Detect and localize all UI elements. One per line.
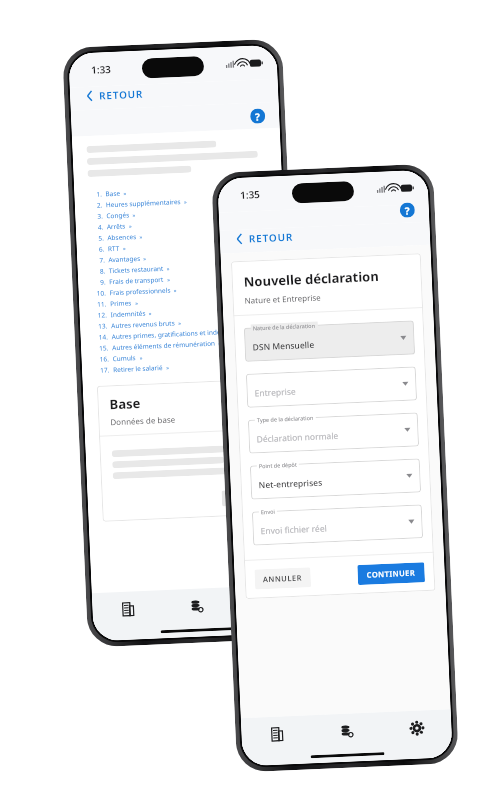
button[interactable]: Net-entreprises bbox=[250, 458, 421, 500]
staticText: 1. bbox=[96, 189, 103, 199]
button[interactable]: 7. bbox=[91, 247, 271, 266]
button[interactable]: 2. bbox=[89, 192, 269, 211]
staticText: Déclaration normale bbox=[256, 430, 339, 445]
staticText: » bbox=[129, 222, 132, 229]
button[interactable]: 4. bbox=[90, 214, 270, 233]
staticText: Autres éléments de rémunération bbox=[112, 339, 215, 352]
staticText: » bbox=[148, 309, 152, 316]
staticText: ANNULER bbox=[263, 572, 303, 584]
staticText: Tickets restaurant bbox=[109, 264, 164, 275]
staticText: Heures supplémentaires bbox=[106, 197, 181, 209]
staticText: Autres revenus bruts bbox=[111, 318, 175, 330]
button[interactable]: ANNULER bbox=[254, 567, 311, 590]
staticText: » bbox=[139, 233, 142, 240]
staticText: DSN Mensuelle bbox=[252, 339, 315, 353]
staticText: Retirer le salarié bbox=[113, 363, 163, 374]
staticText: » bbox=[244, 327, 248, 334]
button[interactable]: 3. bbox=[89, 203, 269, 222]
button[interactable]: RETOUR bbox=[219, 222, 430, 254]
staticText: Entreprise bbox=[254, 386, 296, 399]
staticText: Primes bbox=[110, 298, 132, 308]
staticText: » bbox=[166, 364, 169, 371]
button[interactable]: 10. bbox=[92, 280, 273, 299]
staticText: Envoi bbox=[261, 508, 275, 515]
staticText: » bbox=[132, 211, 135, 218]
staticText: Congés bbox=[106, 210, 130, 220]
button[interactable]: Aide bbox=[250, 108, 265, 124]
staticText: 10. bbox=[97, 288, 107, 298]
staticText: 11. bbox=[97, 299, 107, 309]
button[interactable]: Aide bbox=[399, 202, 415, 218]
staticText: Nature de la déclaration bbox=[253, 322, 316, 331]
button[interactable]: 1. bbox=[88, 181, 268, 200]
button[interactable]: 16. bbox=[95, 346, 276, 365]
button[interactable]: Données bbox=[311, 712, 382, 749]
staticText: 7. bbox=[99, 255, 105, 265]
button[interactable]: Données bbox=[162, 587, 232, 624]
staticText: Absences bbox=[107, 232, 136, 242]
staticText: 12. bbox=[97, 310, 108, 320]
staticText: » bbox=[184, 198, 187, 205]
staticText: Indemnités bbox=[110, 309, 146, 319]
staticText: Arrêts bbox=[107, 221, 126, 231]
staticText: Données de base bbox=[110, 413, 175, 427]
staticText: RETOUR bbox=[249, 230, 294, 245]
button[interactable]: 14. bbox=[94, 324, 275, 343]
staticText: ? bbox=[404, 203, 410, 218]
button[interactable]: Déclarations bbox=[241, 715, 312, 752]
staticText: Autres primes, gratifications et indemni… bbox=[111, 326, 242, 341]
staticText: » bbox=[123, 189, 126, 196]
staticText: ? bbox=[255, 109, 260, 124]
button[interactable]: 15. bbox=[95, 335, 275, 354]
staticText: » bbox=[123, 244, 126, 252]
button[interactable]: 9. bbox=[92, 269, 272, 288]
button[interactable]: 6. bbox=[91, 236, 271, 255]
button[interactable]: 12. bbox=[93, 302, 274, 321]
staticText: Envoi fichier réel bbox=[260, 522, 328, 537]
button[interactable]: DSN Mensuelle bbox=[244, 320, 415, 362]
staticText: 4. bbox=[98, 222, 104, 232]
staticText: 17. bbox=[100, 365, 110, 375]
staticText: 15. bbox=[99, 343, 109, 353]
staticText: » bbox=[167, 276, 170, 283]
staticText: 2. bbox=[97, 200, 103, 210]
staticText: » bbox=[218, 339, 221, 346]
staticText: Nature et Entreprise bbox=[244, 291, 322, 306]
staticText: » bbox=[173, 286, 177, 293]
staticText: Nouvelle déclaration bbox=[243, 267, 380, 291]
staticText: 16. bbox=[99, 354, 110, 364]
staticText: Point de dépôt bbox=[259, 461, 297, 469]
staticText: 13. bbox=[98, 321, 108, 331]
button[interactable]: Déclarations bbox=[92, 590, 163, 627]
staticText: Type de la déclaration bbox=[257, 414, 314, 423]
staticText: CONTINUER bbox=[366, 568, 416, 580]
staticText: RTT bbox=[108, 244, 120, 253]
staticText: Frais de transport bbox=[109, 275, 164, 286]
staticText: 1:35 bbox=[240, 187, 260, 202]
staticText: Net-entreprises bbox=[258, 477, 323, 491]
button[interactable]: 11. bbox=[93, 291, 273, 310]
button[interactable]: Paramètres bbox=[381, 709, 452, 746]
button[interactable]: 17. bbox=[96, 357, 276, 376]
staticText: Avantages bbox=[108, 254, 140, 264]
staticText: » bbox=[139, 354, 143, 361]
staticText: » bbox=[167, 265, 170, 272]
button[interactable]: RETOUR bbox=[70, 79, 279, 111]
staticText: 5. bbox=[98, 233, 104, 243]
staticText: 1:33 bbox=[91, 62, 111, 77]
button[interactable]: Déclaration normale bbox=[248, 412, 419, 454]
button[interactable]: CONTINUER bbox=[357, 562, 425, 585]
button[interactable]: 5. bbox=[90, 225, 270, 244]
button[interactable]: Entreprise bbox=[246, 366, 417, 408]
staticText: 6. bbox=[99, 244, 105, 254]
staticText: 14. bbox=[98, 332, 109, 342]
staticText: » bbox=[135, 299, 138, 306]
staticText: Cumuls bbox=[112, 353, 137, 363]
button[interactable]: 8. bbox=[92, 258, 272, 277]
button[interactable]: Envoi fichier réel bbox=[252, 504, 423, 546]
staticText: » bbox=[178, 319, 181, 326]
staticText: Base bbox=[105, 189, 121, 198]
staticText: 3. bbox=[97, 211, 104, 221]
staticText: » bbox=[143, 255, 146, 262]
button[interactable]: 13. bbox=[94, 313, 274, 332]
